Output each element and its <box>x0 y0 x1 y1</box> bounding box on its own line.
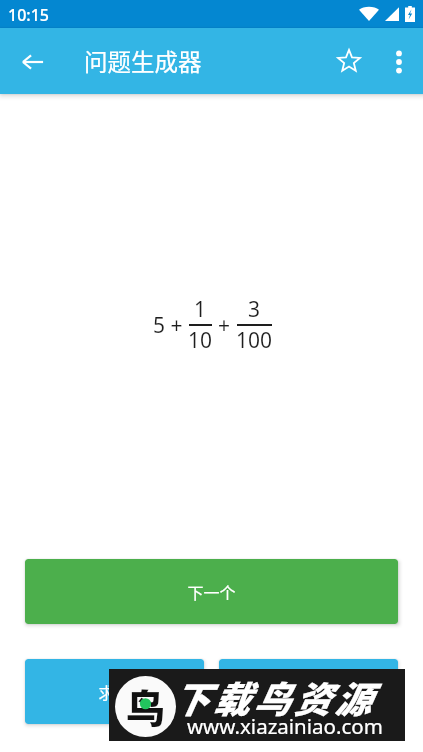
staticText: 下一个 <box>187 580 236 603</box>
staticText: 10:15 <box>8 4 49 26</box>
staticText: 3 <box>248 295 261 324</box>
staticText: 1 <box>194 295 207 324</box>
button[interactable]: 求解 <box>25 659 204 724</box>
staticText: 设置 <box>292 680 325 703</box>
staticText: 问题生成器 <box>84 44 202 78</box>
button[interactable]: Favorite <box>325 37 373 85</box>
staticText: www.xiazainiao.com <box>187 712 383 740</box>
staticText: 下载鸟资源 <box>172 671 375 724</box>
button[interactable]: 设置 <box>219 659 398 724</box>
staticText: 5 + <box>153 311 183 340</box>
button[interactable]: 下一个 <box>25 559 398 624</box>
staticText: 10 <box>188 326 213 355</box>
staticText: 鸟 <box>126 678 166 734</box>
staticText: 100 <box>236 326 273 355</box>
staticText: 求解 <box>98 680 131 703</box>
staticText: + <box>218 311 231 340</box>
button[interactable]: More options <box>376 39 421 84</box>
button[interactable]: Back <box>8 37 57 86</box>
